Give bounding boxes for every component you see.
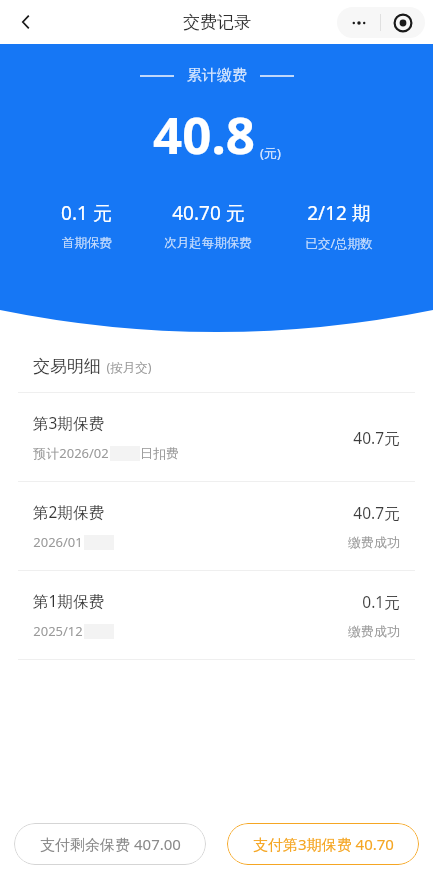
staticText: 缴费成功 [348,534,400,550]
staticText: 2026/01 [33,533,83,551]
staticText: 日扣费 [140,445,179,461]
staticText: 预计2026/02 [33,444,109,462]
staticText: 40.7元 [353,502,400,523]
button[interactable]: Back [6,2,46,42]
staticText: 已交/总期数 [305,235,373,252]
button[interactable]: 第1期保费 [0,571,433,659]
button[interactable]: 第3期保费 [0,393,433,481]
button[interactable]: 第2期保费 [0,482,433,570]
staticText: (元) [260,144,281,162]
button[interactable]: More [337,13,380,33]
button[interactable]: Target [381,13,425,33]
staticText: 2/12 期 [307,200,371,226]
staticText: 首期保费 [62,235,112,251]
staticText: 支付剩余保费 407.00 [40,834,181,854]
button[interactable]: 支付第3期保费 40.70 [227,823,419,865]
button[interactable]: More [337,7,425,38]
staticText: 2025/12 [33,622,83,640]
staticText: 缴费成功 [348,623,400,639]
staticText: 累计缴费 [187,66,247,85]
staticText: 交易明细 [33,356,101,377]
staticText: 第1期保费 [33,590,104,611]
staticText: 40.70 元 [172,200,245,226]
staticText: 支付第3期保费 40.70 [253,834,394,854]
staticText: 次月起每期保费 [164,235,252,251]
staticText: 0.1元 [362,591,400,612]
staticText: 40.8 [153,99,255,168]
staticText: (按月交) [106,359,152,376]
staticText: 第2期保费 [33,501,104,522]
staticText: 40.7元 [353,427,400,448]
staticText: 第3期保费 [33,412,104,433]
staticText: 0.1 元 [61,200,112,226]
staticText: 交费记录 [183,12,251,33]
button[interactable]: 支付剩余保费 407.00 [14,823,206,865]
